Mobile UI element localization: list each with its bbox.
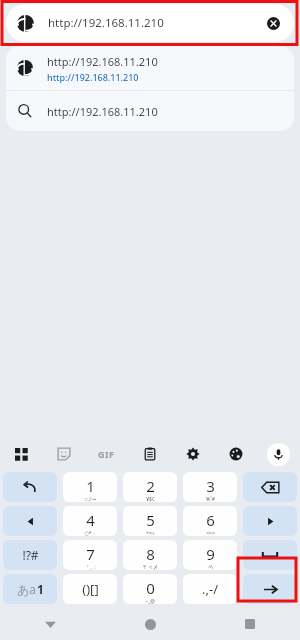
button[interactable]: Undo — [3, 472, 57, 502]
button[interactable]: 3 — [183, 472, 237, 502]
button[interactable]: 7 — [63, 540, 117, 570]
staticText: 4 — [86, 510, 95, 530]
button[interactable]: 6 — [183, 506, 237, 536]
button[interactable]: ()[] — [63, 574, 117, 604]
staticText: GIF — [98, 448, 115, 460]
button[interactable]: http://192.168.11.210 — [6, 46, 294, 90]
staticText: ☆♪→ — [84, 496, 96, 502]
button[interactable]: 5 — [123, 506, 177, 536]
button[interactable]: 2 — [123, 472, 177, 502]
staticText: <=> — [206, 530, 215, 536]
staticText: 1 — [86, 476, 95, 496]
staticText: http://192.168.11.210 — [47, 104, 158, 119]
staticText: 0 — [146, 578, 155, 598]
staticText: %˚# — [206, 496, 215, 502]
staticText: .,-/ — [202, 580, 218, 598]
staticText: 8 — [146, 544, 155, 564]
staticText: 9 — [206, 544, 215, 564]
button[interactable]: 8 — [123, 540, 177, 570]
button[interactable]: http://192.168.11.210 — [6, 91, 294, 131]
staticText: 5 — [146, 510, 155, 530]
button[interactable]: Hide keyboard — [0, 608, 100, 640]
button[interactable]: Space — [243, 540, 297, 570]
staticText: !?# — [22, 547, 39, 563]
staticText: 3 — [206, 476, 215, 496]
staticText: http://192.168.11.210 — [48, 15, 164, 31]
staticText: 7 — [86, 544, 95, 564]
staticText: http://192.168.11.210 — [47, 54, 158, 69]
button[interactable]: Recent apps — [200, 608, 300, 640]
staticText: ○*・ — [84, 530, 97, 536]
button[interactable]: !?# — [3, 540, 57, 570]
button[interactable]: .,-/ — [183, 574, 237, 604]
button[interactable]: http://192.168.11.210 — [6, 4, 294, 42]
staticText: あa — [17, 581, 37, 597]
staticText: 「」: — [84, 564, 96, 570]
staticText: ~_@ — [145, 598, 155, 604]
staticText: +×÷ — [146, 530, 155, 536]
button[interactable]: Home — [100, 608, 200, 640]
button[interactable]: Voice input — [257, 440, 300, 468]
button[interactable]: 4 — [63, 506, 117, 536]
button[interactable]: Move cursor left — [3, 506, 57, 536]
button[interactable]: Apps — [0, 440, 42, 468]
staticText: http://192.168.11.210 — [47, 71, 139, 83]
staticText: ^\ — [208, 564, 213, 570]
button[interactable]: GIF — [85, 440, 128, 468]
button[interactable]: Themes — [214, 440, 257, 468]
button[interactable]: 9 — [183, 540, 237, 570]
staticText: 1 — [37, 581, 44, 597]
staticText: ¥$¢ — [146, 496, 155, 502]
staticText: ()[] — [82, 580, 99, 598]
staticText: 2 — [146, 476, 155, 496]
staticText: 6 — [206, 510, 215, 530]
button[interactable]: あa — [3, 574, 57, 604]
staticText: 〒々〆 — [143, 564, 158, 570]
button[interactable]: Stickers — [42, 440, 85, 468]
button[interactable]: Move cursor right — [243, 506, 297, 536]
button[interactable]: Clear text — [263, 13, 283, 33]
button[interactable]: Backspace — [243, 472, 297, 502]
button[interactable]: Settings — [171, 440, 214, 468]
button[interactable]: Enter — [243, 574, 297, 604]
button[interactable]: Clipboard — [128, 440, 171, 468]
button[interactable]: 0 — [123, 574, 177, 604]
button[interactable]: 1 — [63, 472, 117, 502]
